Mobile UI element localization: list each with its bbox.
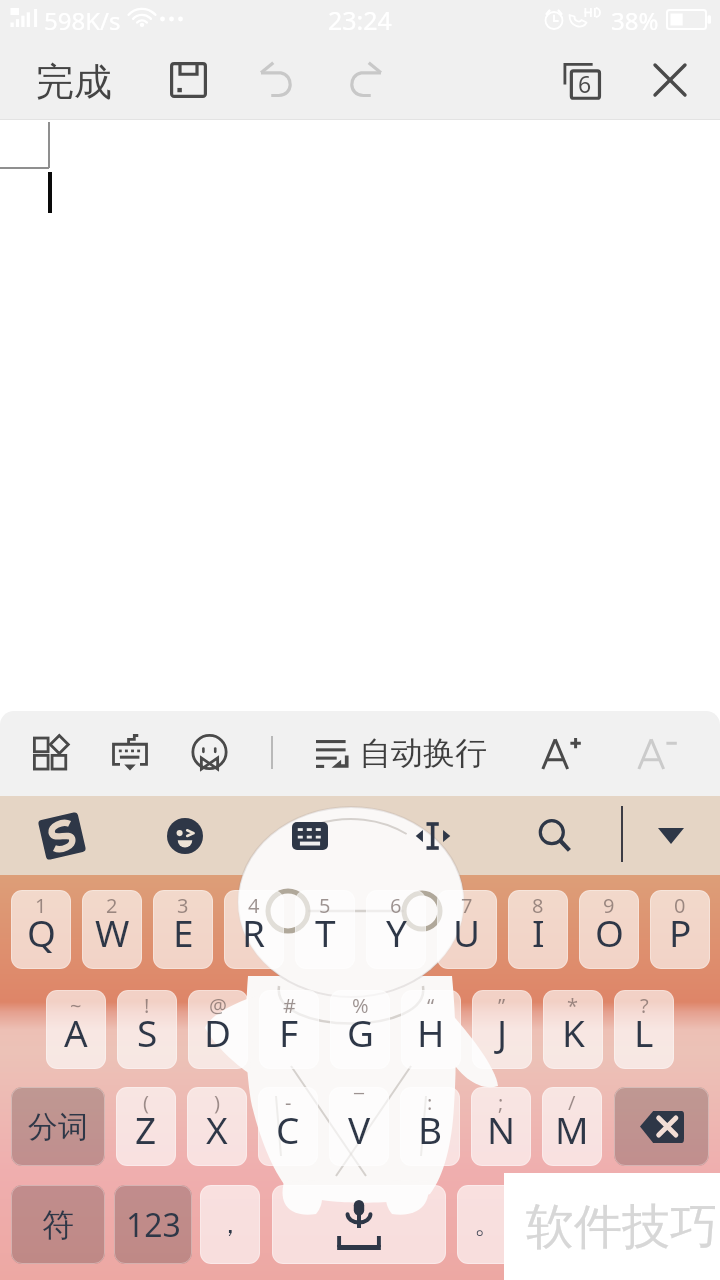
button[interactable]: 符 (11, 1185, 105, 1264)
button[interactable]: More (639, 804, 703, 868)
button[interactable]: ¯ (329, 1087, 389, 1166)
staticText: X (206, 1104, 228, 1154)
staticText: C (276, 1104, 300, 1154)
staticText: 7 (461, 892, 473, 919)
staticText: 5 (319, 892, 331, 919)
staticText: A (64, 1007, 88, 1057)
staticText: P (669, 907, 692, 957)
staticText: - (285, 1089, 292, 1116)
staticText: ) (214, 1089, 220, 1116)
button[interactable]: ” (472, 990, 532, 1069)
button[interactable]: 1 (11, 890, 71, 969)
staticText: % (352, 992, 369, 1019)
button[interactable]: ! (117, 990, 177, 1069)
staticText: B (418, 1104, 443, 1154)
staticText: 598K/s (44, 4, 121, 37)
button[interactable]: 5 (295, 890, 355, 969)
button[interactable]: Keyboard layout (278, 804, 342, 868)
button[interactable]: 0 (650, 890, 710, 969)
button[interactable]: Close (636, 48, 704, 112)
button[interactable]: ~ (46, 990, 106, 1069)
button[interactable]: ) (187, 1087, 247, 1166)
button[interactable]: Decrease font size (624, 721, 692, 785)
staticText: 8 (532, 892, 544, 919)
button[interactable]: 2 (82, 890, 142, 969)
staticText: R (242, 907, 266, 957)
staticText: @ (209, 992, 227, 1019)
button[interactable]: 完成 (22, 50, 126, 114)
staticText: F (279, 1007, 299, 1057)
button[interactable]: 。 (457, 1185, 517, 1264)
staticText: G (347, 1007, 374, 1057)
button[interactable]: ? (614, 990, 674, 1069)
button[interactable]: # (259, 990, 319, 1069)
staticText: 完成 (36, 58, 112, 106)
staticText: ~ (70, 992, 82, 1019)
button[interactable]: Backspace (614, 1087, 709, 1166)
staticText: ， (217, 1208, 243, 1241)
staticText: 123 (126, 1203, 181, 1247)
button[interactable]: Emoticons (153, 804, 217, 868)
button[interactable]: 6 (366, 890, 426, 969)
button[interactable]: 8 (508, 890, 568, 969)
button[interactable]: 4 (224, 890, 284, 969)
button[interactable]: 自动换行 (316, 721, 487, 785)
button[interactable]: Apps (17, 721, 85, 785)
button[interactable] (528, 1185, 612, 1264)
button[interactable]: : (400, 1087, 460, 1166)
button[interactable]: Increase font size (528, 721, 596, 785)
staticText: 符 (42, 1205, 74, 1245)
button[interactable]: % (330, 990, 390, 1069)
staticText: Y (386, 907, 407, 957)
staticText: V (348, 1104, 371, 1154)
staticText: # (283, 992, 296, 1019)
button[interactable]: Search (523, 804, 587, 868)
button[interactable]: 3 (153, 890, 213, 969)
button[interactable]: * (543, 990, 603, 1069)
staticText: K (562, 1007, 585, 1057)
staticText: 1 (35, 892, 47, 919)
staticText: U (453, 907, 481, 957)
staticText: D (204, 1007, 232, 1057)
staticText: O (595, 907, 624, 957)
staticText: ( (143, 1089, 149, 1116)
button[interactable]: Space and voice input (272, 1185, 446, 1264)
button[interactable]: Notes (548, 48, 616, 112)
staticText: S (137, 1007, 158, 1057)
staticText: : (427, 1089, 433, 1116)
button[interactable]: Undo (242, 48, 310, 112)
staticText: 9 (603, 892, 615, 919)
button[interactable]: / (542, 1087, 602, 1166)
staticText: E (173, 907, 194, 957)
staticText: ; (498, 1089, 504, 1116)
button[interactable]: 9 (579, 890, 639, 969)
button[interactable]: “ (401, 990, 461, 1069)
staticText: ? (640, 992, 649, 1019)
staticText: 23:24 (328, 3, 392, 37)
button[interactable]: Move cursor (401, 804, 465, 868)
button[interactable]: ( (116, 1087, 176, 1166)
staticText: L (634, 1007, 654, 1057)
staticText: 软件技巧 (526, 1197, 718, 1257)
staticText: W (95, 907, 130, 957)
staticText: Q (27, 907, 56, 957)
button[interactable]: Save (152, 48, 224, 112)
staticText: Z (135, 1104, 157, 1154)
staticText: 6 (390, 892, 402, 919)
button[interactable]: Hide keyboard (96, 721, 164, 785)
staticText: 2 (106, 892, 118, 919)
staticText: 3 (177, 892, 189, 919)
staticText: J (497, 1007, 508, 1057)
button[interactable]: 分词 (11, 1087, 105, 1166)
button[interactable]: ， (200, 1185, 260, 1264)
staticText: 。 (474, 1208, 500, 1241)
button[interactable]: 7 (437, 890, 497, 969)
button[interactable]: - (258, 1087, 318, 1166)
button[interactable]: Sogou input (30, 804, 94, 868)
button[interactable] (623, 1185, 709, 1264)
button[interactable]: Emoji (175, 721, 243, 785)
button[interactable]: ; (471, 1087, 531, 1166)
button[interactable]: Redo (332, 48, 400, 112)
button[interactable]: 123 (114, 1185, 192, 1264)
button[interactable]: @ (188, 990, 248, 1069)
